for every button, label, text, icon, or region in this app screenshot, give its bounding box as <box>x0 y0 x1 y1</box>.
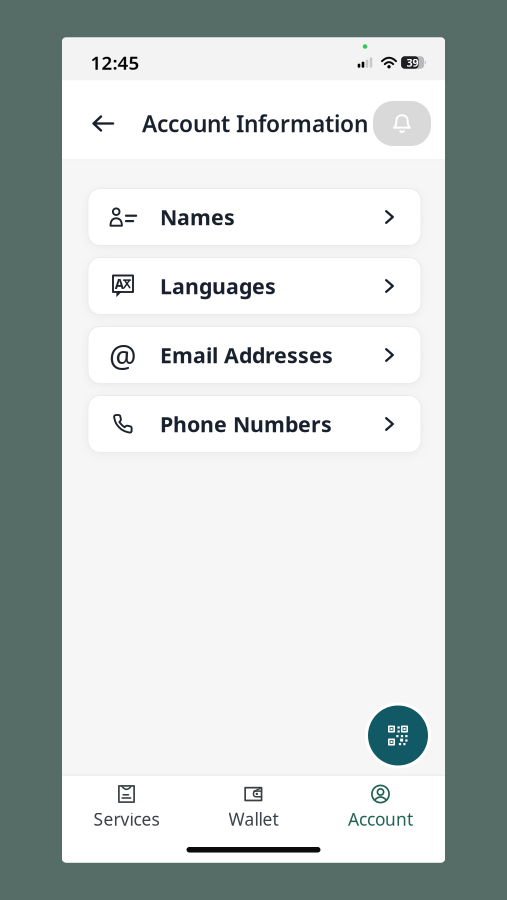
staticText: Phone Numbers <box>160 410 332 438</box>
button[interactable] <box>85 105 121 141</box>
staticText: @ <box>109 335 137 375</box>
staticText: 12:45 <box>90 50 139 75</box>
staticText: Account Information <box>142 108 368 138</box>
staticText: A <box>115 275 124 293</box>
staticText: Services <box>93 807 159 830</box>
button[interactable]: Wallet <box>190 784 317 830</box>
button[interactable]: Account <box>317 784 444 830</box>
button[interactable]: @ <box>88 326 421 383</box>
button[interactable]: Services <box>63 784 190 830</box>
button[interactable]: Names <box>88 188 421 245</box>
staticText: 39 <box>407 55 419 70</box>
staticText: Names <box>160 203 235 231</box>
staticText: Languages <box>160 272 276 300</box>
staticText: Account <box>348 807 413 830</box>
staticText: Wallet <box>228 807 278 830</box>
button[interactable] <box>365 702 431 768</box>
button[interactable] <box>373 101 431 146</box>
button[interactable]: Phone Numbers <box>88 395 421 452</box>
button[interactable]: A <box>88 257 421 314</box>
staticText: Email Addresses <box>160 341 333 369</box>
